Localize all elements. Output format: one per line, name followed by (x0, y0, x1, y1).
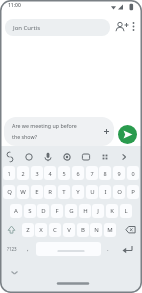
button[interactable]: 8 (99, 166, 111, 180)
button[interactable] (36, 242, 101, 256)
staticText: A (14, 207, 18, 215)
staticText: Are we meeting up before (12, 122, 77, 129)
staticText: K (110, 207, 114, 215)
staticText: E (35, 188, 39, 196)
staticText: Jon Curtis (13, 24, 41, 32)
button[interactable]: , (22, 242, 34, 256)
button[interactable] (117, 149, 131, 165)
staticText: S (28, 207, 32, 215)
button[interactable] (79, 149, 93, 165)
button[interactable] (22, 149, 36, 165)
button[interactable]: C (49, 223, 61, 237)
staticText: O (117, 188, 122, 196)
staticText: 2 (21, 170, 25, 177)
button[interactable] (41, 149, 55, 165)
staticText: 11:00 (8, 2, 21, 9)
button[interactable]: S (24, 204, 36, 218)
button[interactable]: N (90, 223, 102, 237)
staticText: 0 (131, 170, 135, 177)
staticText: 7 (90, 170, 94, 177)
staticText: Y (76, 188, 80, 196)
button[interactable]: L (120, 204, 132, 218)
staticText: C (53, 226, 57, 234)
staticText: D (41, 207, 46, 215)
button[interactable]: M (104, 223, 116, 237)
staticText: 3 (35, 170, 39, 177)
staticText: F (55, 207, 59, 215)
button[interactable]: W (17, 185, 29, 199)
button[interactable] (122, 223, 139, 237)
staticText: T (62, 188, 66, 196)
button[interactable]: . (102, 242, 114, 256)
staticText: Z (26, 226, 30, 234)
staticText: G (69, 207, 74, 215)
button[interactable]: F (51, 204, 63, 218)
staticText: 1 (7, 170, 11, 177)
staticText: I (104, 188, 107, 196)
button[interactable]: B (77, 223, 89, 237)
button[interactable] (3, 223, 20, 237)
button[interactable]: H (79, 204, 91, 218)
button[interactable]: 5 (58, 166, 70, 180)
button[interactable]: I (99, 185, 111, 199)
staticText: H (83, 207, 88, 215)
button[interactable]: Y (72, 185, 84, 199)
button[interactable]: 0 (127, 166, 139, 180)
staticText: Q (7, 188, 12, 196)
button[interactable]: P (127, 185, 139, 199)
staticText: U (90, 188, 95, 196)
button[interactable]: D (37, 204, 49, 218)
button[interactable]: R (44, 185, 56, 199)
button[interactable]: ?123 (3, 242, 21, 256)
button[interactable]: Jon Curtis (5, 19, 110, 36)
staticText: P (131, 188, 135, 196)
button[interactable]: J (92, 204, 104, 218)
button[interactable] (128, 20, 138, 36)
button[interactable]: 7 (86, 166, 98, 180)
staticText: 8 (103, 170, 107, 177)
button[interactable]: 9 (113, 166, 125, 180)
button[interactable] (118, 125, 137, 144)
button[interactable]: 3 (31, 166, 43, 180)
staticText: V (67, 226, 71, 234)
button[interactable]: U (86, 185, 98, 199)
staticText: , (27, 245, 29, 253)
staticText: X (39, 226, 43, 234)
button[interactable]: Q (3, 185, 15, 199)
staticText: N (94, 226, 99, 234)
button[interactable]: A (10, 204, 22, 218)
staticText: 9 (117, 170, 121, 177)
staticText: 4 (48, 170, 52, 177)
button[interactable]: 2 (17, 166, 29, 180)
button[interactable]: T (58, 185, 70, 199)
button[interactable]: K (106, 204, 118, 218)
button[interactable]: V (63, 223, 75, 237)
staticText: 5 (62, 170, 66, 177)
staticText: R (48, 188, 52, 196)
button[interactable]: O (113, 185, 125, 199)
staticText: L (124, 207, 128, 215)
button[interactable]: 4 (44, 166, 56, 180)
staticText: ?123 (7, 246, 17, 252)
button[interactable] (112, 20, 128, 36)
staticText: M (107, 226, 113, 234)
button[interactable]: 1 (3, 166, 15, 180)
button[interactable] (3, 149, 17, 165)
staticText: . (107, 245, 109, 253)
button[interactable]: 6 (72, 166, 84, 180)
staticText: J (97, 207, 99, 215)
button[interactable]: Are we meeting up before (4, 117, 114, 146)
button[interactable]: X (35, 223, 47, 237)
staticText: B (81, 226, 85, 234)
staticText: 6 (76, 170, 80, 177)
staticText: the show? (12, 133, 38, 140)
button[interactable]: G (65, 204, 77, 218)
button[interactable] (118, 242, 138, 256)
button[interactable] (60, 149, 74, 165)
staticText: W (20, 188, 26, 196)
button[interactable] (98, 149, 112, 165)
button[interactable]: E (31, 185, 43, 199)
button[interactable]: Z (22, 223, 34, 237)
